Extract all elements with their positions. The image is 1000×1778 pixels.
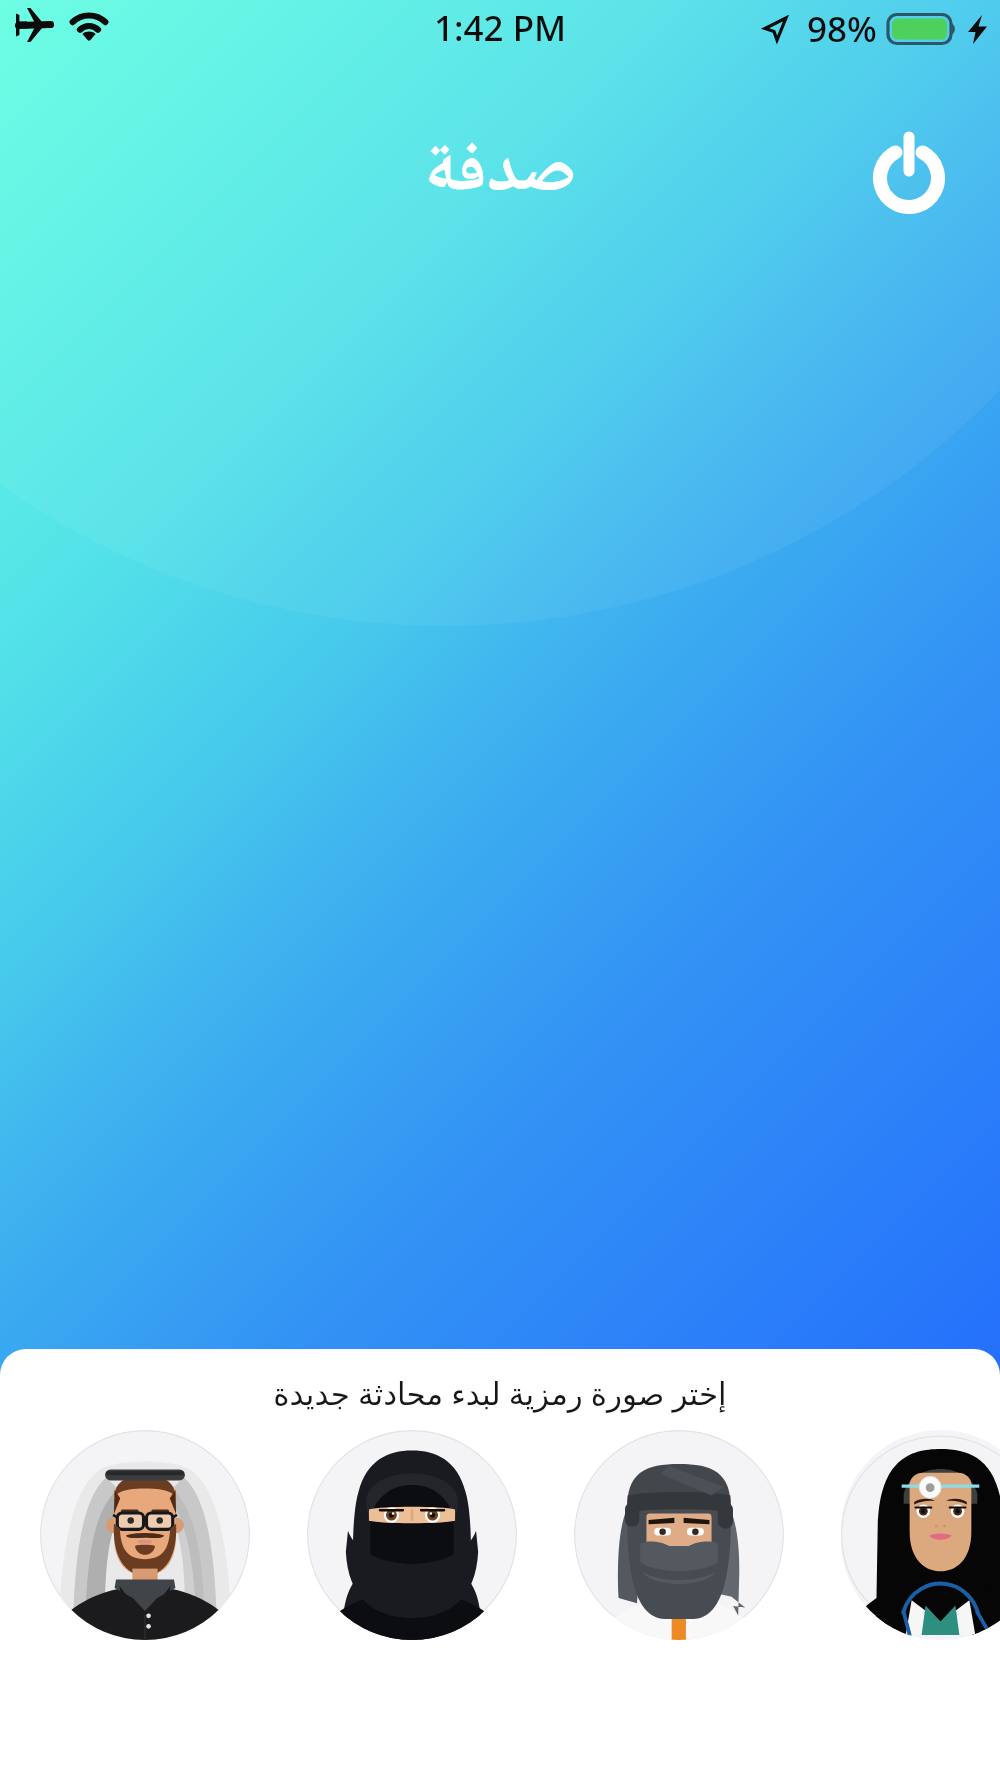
button[interactable]: Man with turban <box>574 1430 784 1640</box>
staticText: 98% <box>807 5 877 53</box>
staticText: صدفة <box>424 115 577 234</box>
button[interactable]: Bearded man with glasses <box>40 1430 250 1640</box>
staticText: 1:42 PM <box>434 4 567 52</box>
staticText: إختر صورة رمزية لبدء محادثة جديدة <box>273 1372 727 1414</box>
button[interactable]: Woman in niqab <box>307 1430 517 1640</box>
button[interactable]: Power <box>867 131 951 215</box>
button[interactable]: Female doctor <box>841 1430 1000 1640</box>
